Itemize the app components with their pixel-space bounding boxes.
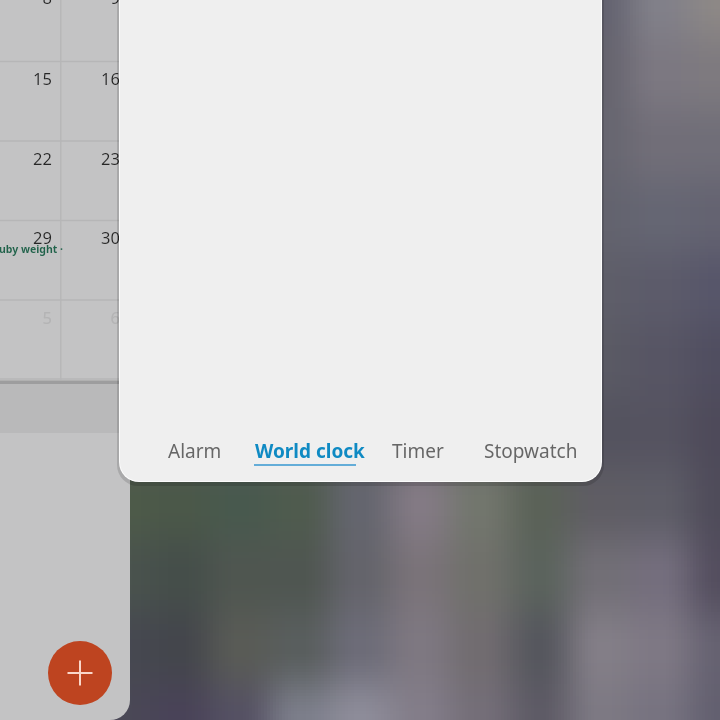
staticText: 9 — [0, 0, 120, 8]
staticText: Alarm — [168, 438, 222, 464]
staticText: Timer — [392, 438, 444, 464]
staticText: 22 — [0, 147, 52, 169]
staticText: 6 — [0, 306, 120, 328]
staticText: 30 — [0, 226, 120, 248]
button[interactable]: Create event — [48, 641, 112, 705]
staticText: World clock — [255, 438, 365, 464]
button[interactable]: World clock — [255, 438, 365, 464]
button[interactable]: Alarm — [168, 438, 222, 464]
button[interactable]: Stopwatch — [484, 438, 578, 464]
button[interactable]: 8 — [0, 0, 130, 720]
staticText: Stopwatch — [484, 438, 578, 464]
staticText: 15 — [0, 67, 52, 89]
staticText: 29 — [0, 226, 52, 248]
staticText: 8 — [0, 0, 52, 8]
staticText: 16 — [0, 67, 120, 89]
staticText: uby weight · — [0, 242, 64, 256]
button[interactable]: Timer — [392, 438, 444, 464]
staticText: 23 — [0, 147, 120, 169]
